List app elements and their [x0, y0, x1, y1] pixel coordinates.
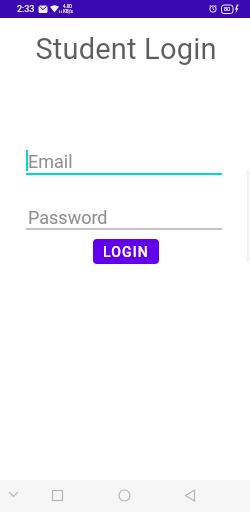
button[interactable]	[0, 480, 84, 512]
button[interactable]	[167, 480, 250, 512]
button[interactable]	[84, 480, 167, 512]
button[interactable]	[26, 202, 222, 230]
button[interactable]: LOGIN	[93, 239, 159, 264]
staticText: 2:33	[17, 4, 35, 15]
staticText: Student Login	[1, 32, 250, 66]
staticText: LOGIN	[103, 244, 149, 260]
staticText: Password	[28, 207, 108, 228]
staticText: KB/s	[63, 9, 73, 14]
staticText: Email	[28, 151, 73, 172]
button[interactable]	[26, 146, 222, 175]
staticText: 4.00	[63, 4, 72, 9]
staticText: 80	[224, 6, 231, 12]
